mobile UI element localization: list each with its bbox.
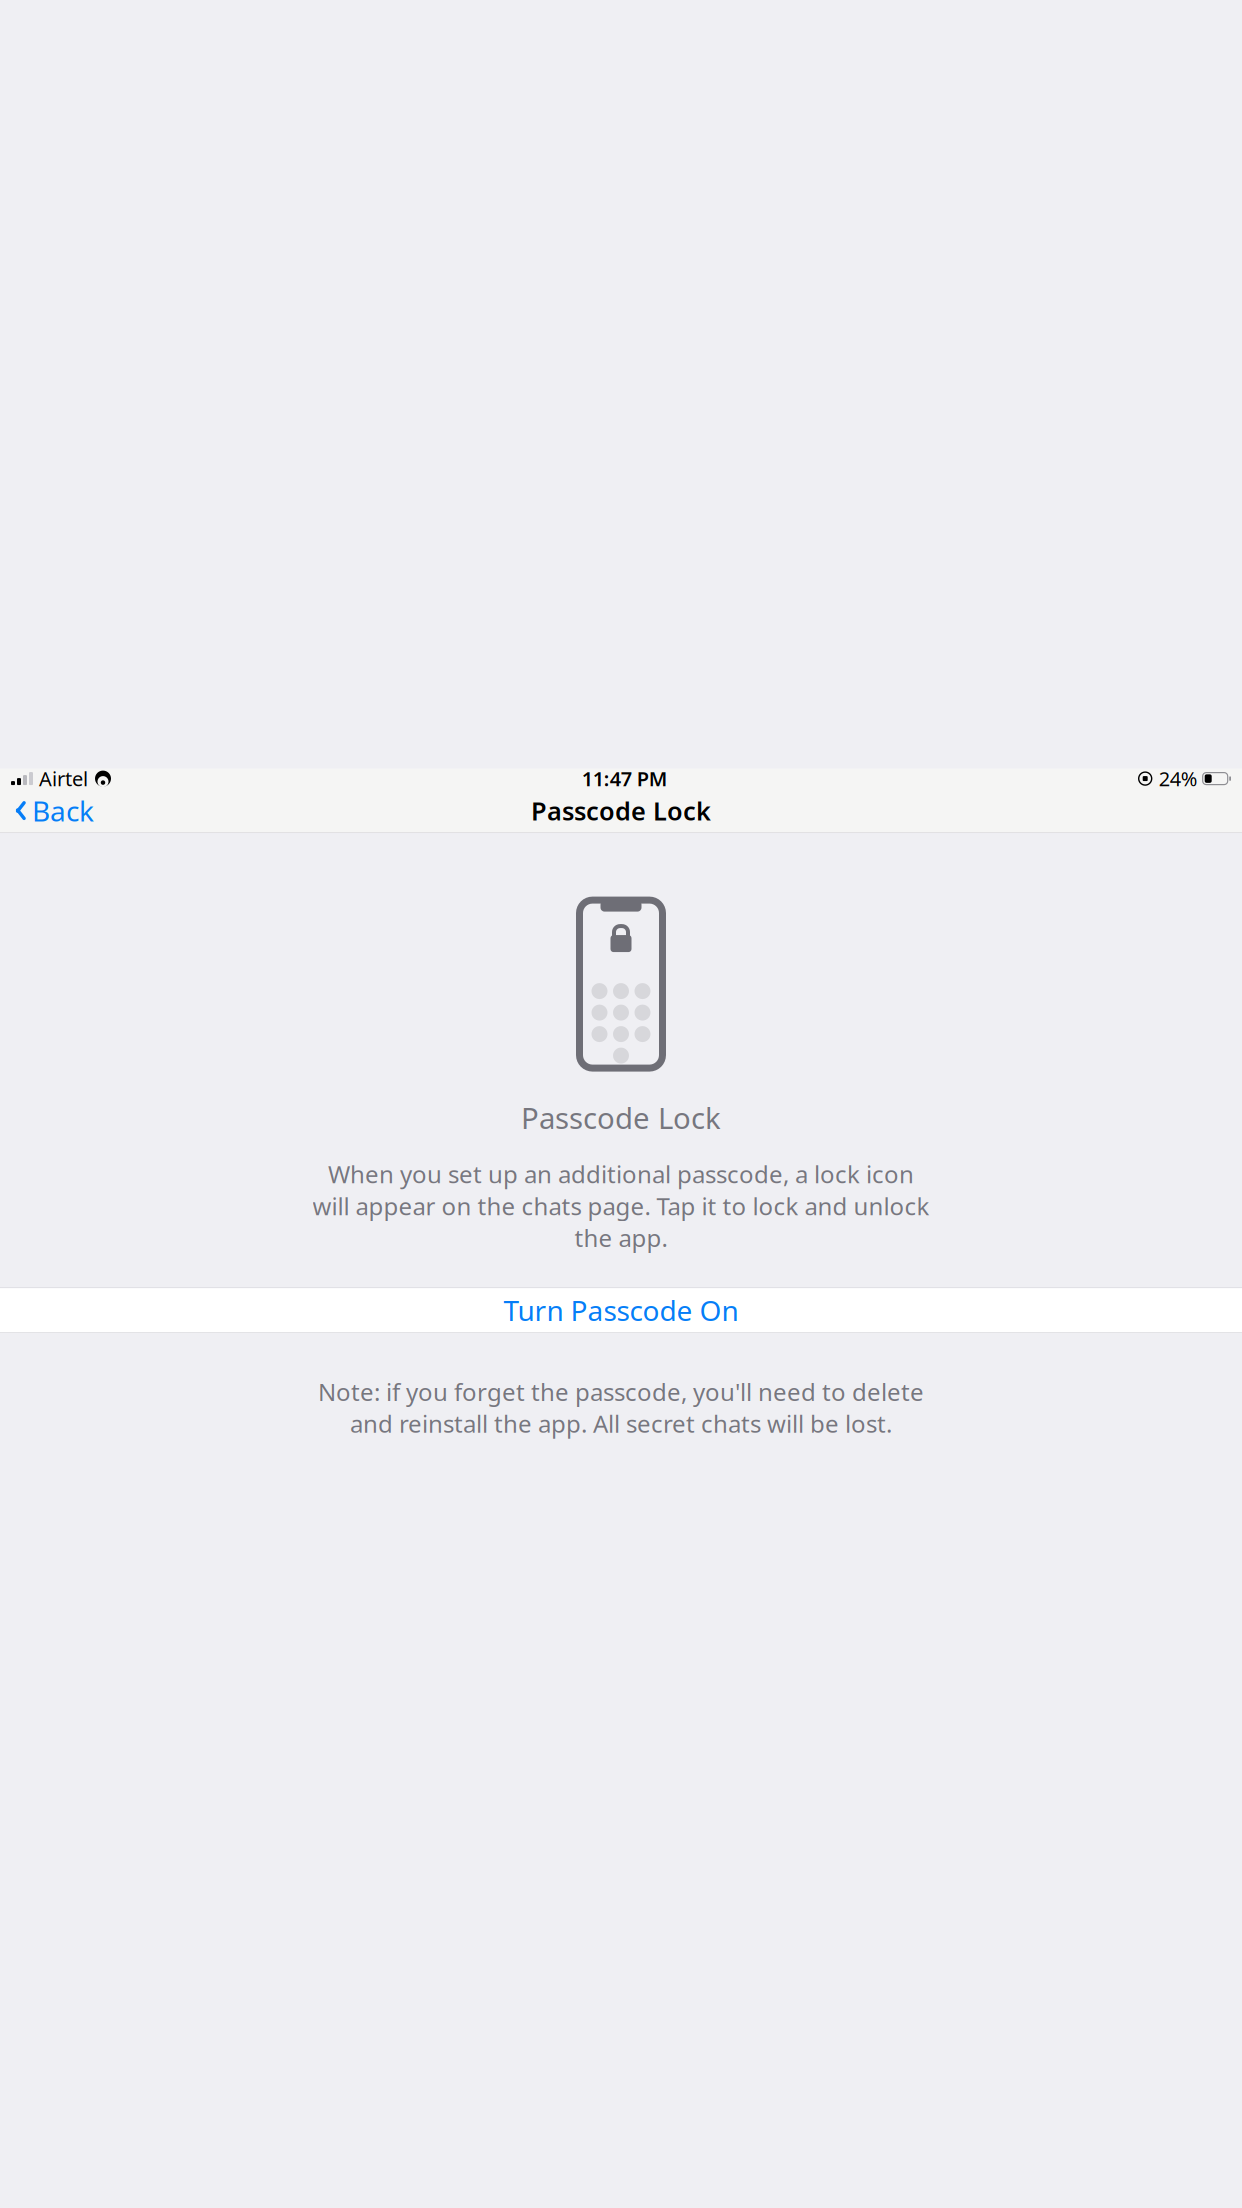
staticText: Passcode Lock <box>531 794 711 827</box>
button[interactable]: Back <box>3 784 102 837</box>
staticText: Passcode Lock <box>521 1098 721 1137</box>
staticText: 24% <box>1159 765 1198 792</box>
staticText: 11:47 PM <box>582 765 668 792</box>
staticText: Turn Passcode On <box>503 1292 738 1329</box>
staticText: Back <box>32 792 94 829</box>
staticText: When you set up an additional passcode, … <box>328 1158 914 1190</box>
staticText: Note: if you forget the passcode, you'll… <box>318 1376 924 1408</box>
staticText: and reinstall the app. All secret chats … <box>350 1407 892 1439</box>
staticText: will appear on the chats page. Tap it to… <box>312 1190 929 1222</box>
staticText: Airtel <box>39 765 88 792</box>
button[interactable]: Turn Passcode On <box>0 1288 1242 1332</box>
staticText: the app. <box>574 1222 667 1254</box>
